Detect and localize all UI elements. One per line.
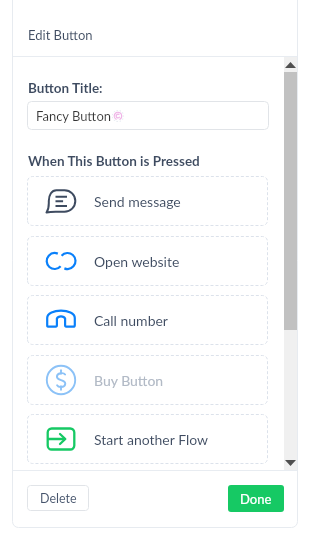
staticText: Start another Flow xyxy=(94,431,209,448)
staticText: Buy Button xyxy=(94,372,164,389)
staticText: Button Title: xyxy=(28,80,103,96)
button[interactable]: Call number xyxy=(27,295,268,345)
button[interactable]: Send message xyxy=(27,176,268,226)
staticText: Delete xyxy=(40,491,77,506)
button[interactable]: Fancy Button xyxy=(27,101,269,130)
staticText: Open website xyxy=(94,253,180,270)
button[interactable]: Start another Flow xyxy=(27,414,268,464)
button[interactable]: Buy Button xyxy=(27,355,268,405)
button[interactable]: Done xyxy=(228,485,284,512)
button[interactable]: Scroll xyxy=(284,57,297,471)
button[interactable]: Delete xyxy=(27,485,89,511)
staticText: Call number xyxy=(94,312,168,329)
button[interactable]: Open website xyxy=(27,236,268,286)
staticText: Done xyxy=(240,491,272,507)
staticText: Send message xyxy=(94,193,181,210)
staticText: Edit Button xyxy=(28,27,93,43)
staticText: When This Button is Pressed xyxy=(28,153,200,169)
staticText: Fancy Button xyxy=(36,108,112,124)
